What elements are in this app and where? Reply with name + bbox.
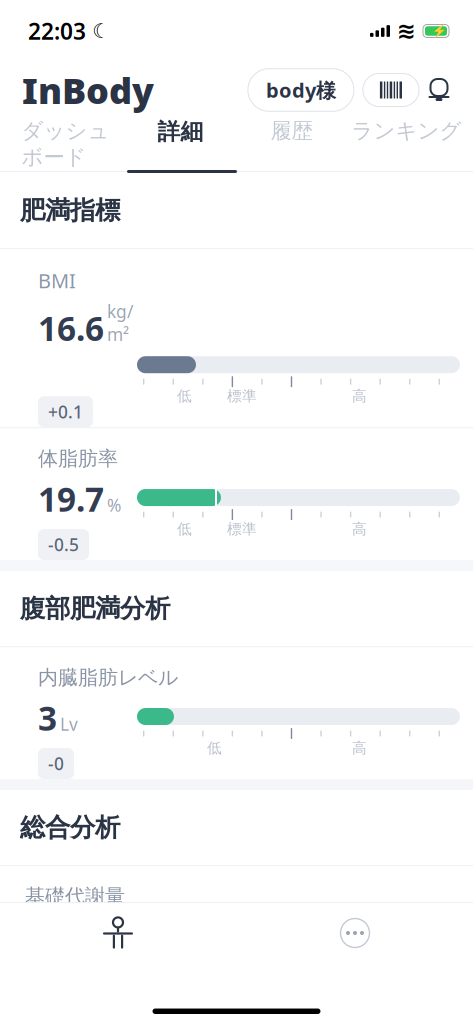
staticText: 総合分析 xyxy=(20,812,120,843)
staticText: 標準 xyxy=(227,520,257,538)
staticText: 内臓脂肪レベル xyxy=(38,665,178,690)
button[interactable]: 履歴 xyxy=(236,118,346,144)
staticText: 基礎代謝量 xyxy=(25,884,125,909)
staticText: 高 xyxy=(352,739,367,757)
button[interactable]: body様 xyxy=(248,69,354,111)
staticText: 腹部肥満分析 xyxy=(20,593,170,624)
staticText: 低 xyxy=(207,739,222,757)
staticText: 高 xyxy=(352,520,367,538)
staticText: 22:03 xyxy=(28,16,86,46)
staticText: 肥満指標 xyxy=(20,195,120,226)
staticText: 詳細 xyxy=(157,118,203,146)
staticText: 高 xyxy=(352,387,367,405)
staticText: -0 xyxy=(48,752,64,775)
staticText: 低 xyxy=(177,520,192,538)
staticText: 体脂肪率 xyxy=(38,446,118,471)
staticText: 履歴 xyxy=(270,118,312,144)
staticText: BMI xyxy=(38,267,76,294)
button[interactable]: ダッシュボード xyxy=(6,118,124,170)
staticText: 19.7 xyxy=(38,477,104,521)
staticText: kg/m² xyxy=(107,300,133,346)
staticText: 標準 xyxy=(227,387,257,405)
button[interactable]: 詳細 xyxy=(124,118,236,170)
staticText: InBody xyxy=(22,66,154,114)
button[interactable]: その他 xyxy=(295,903,415,963)
staticText: ランキング xyxy=(351,118,461,144)
staticText: ダッシュボード xyxy=(21,118,109,170)
staticText: 低 xyxy=(177,387,192,405)
button[interactable]: ランキング xyxy=(346,118,466,144)
button[interactable]: 通知 xyxy=(419,70,459,110)
staticText: +0.1 xyxy=(48,400,83,423)
staticText: -0.5 xyxy=(48,533,79,556)
staticText: body様 xyxy=(266,77,336,103)
staticText: % xyxy=(107,494,121,517)
staticText: 16.6 xyxy=(38,306,104,350)
staticText: Lv xyxy=(60,713,78,736)
staticText: ☾ xyxy=(92,20,110,42)
button[interactable]: バーコード xyxy=(363,73,419,106)
button[interactable]: ボディ xyxy=(58,903,178,963)
staticText: ≋ xyxy=(397,18,416,44)
staticText: ⚡ xyxy=(432,24,447,38)
staticText: 3 xyxy=(38,696,57,740)
